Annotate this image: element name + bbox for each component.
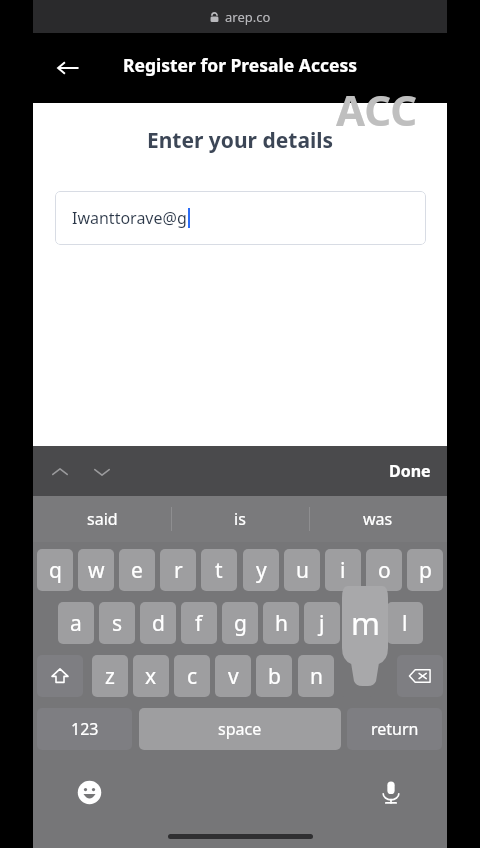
- button[interactable]: g: [222, 602, 258, 644]
- button[interactable]: a: [58, 602, 94, 644]
- button[interactable]: e: [119, 549, 155, 591]
- button[interactable]: t: [201, 549, 237, 591]
- button[interactable]: Iwanttorave@g: [55, 191, 426, 245]
- button[interactable]: c: [174, 655, 210, 697]
- button[interactable]: Next field: [83, 453, 121, 491]
- button[interactable]: p: [407, 549, 443, 591]
- staticText: y: [256, 556, 267, 585]
- button[interactable]: u: [284, 549, 320, 591]
- button[interactable]: was: [309, 496, 447, 542]
- staticText: said: [87, 508, 118, 530]
- button[interactable]: f: [181, 602, 217, 644]
- staticText: w: [88, 556, 105, 585]
- button[interactable]: Address bar arep.co: [33, 0, 447, 33]
- staticText: n: [310, 662, 323, 691]
- staticText: was: [363, 508, 393, 530]
- staticText: m: [351, 602, 380, 644]
- button[interactable]: x: [133, 655, 169, 697]
- button[interactable]: w: [78, 549, 114, 591]
- staticText: i: [340, 556, 346, 585]
- staticText: f: [195, 609, 203, 638]
- button[interactable]: n: [298, 655, 334, 697]
- button[interactable]: Previous field: [41, 453, 79, 491]
- staticText: b: [268, 662, 281, 691]
- staticText: o: [378, 556, 391, 585]
- button[interactable]: is: [171, 496, 309, 542]
- staticText: e: [131, 556, 143, 585]
- button[interactable]: o: [366, 549, 402, 591]
- button[interactable]: 123: [37, 708, 132, 750]
- staticText: Iwanttorave@g: [72, 207, 187, 229]
- button[interactable]: Done: [379, 452, 441, 490]
- button[interactable]: y: [243, 549, 279, 591]
- staticText: g: [234, 609, 247, 638]
- button[interactable]: Dictation: [371, 772, 411, 812]
- button[interactable]: Backspace: [397, 655, 443, 697]
- button[interactable]: space: [139, 708, 341, 750]
- staticText: arep.co: [225, 8, 271, 26]
- staticText: return: [371, 718, 419, 740]
- button[interactable]: Shift: [37, 655, 83, 697]
- button[interactable]: return: [347, 708, 442, 750]
- button[interactable]: q: [37, 549, 73, 591]
- button[interactable]: v: [215, 655, 251, 697]
- button[interactable]: Emoji: [69, 772, 109, 812]
- button[interactable]: i: [325, 549, 361, 591]
- staticText: u: [296, 556, 309, 585]
- button[interactable]: r: [160, 549, 196, 591]
- button[interactable]: b: [256, 655, 292, 697]
- button[interactable]: d: [140, 602, 176, 644]
- staticText: s: [112, 609, 123, 638]
- staticText: q: [49, 556, 62, 585]
- staticText: ACC: [336, 81, 418, 138]
- button[interactable]: s: [99, 602, 135, 644]
- staticText: j: [319, 609, 325, 638]
- staticText: t: [215, 556, 223, 585]
- staticText: z: [105, 662, 115, 691]
- staticText: Register for Presale Access: [123, 53, 357, 77]
- staticText: 123: [71, 718, 99, 740]
- staticText: is: [234, 508, 246, 530]
- button[interactable]: [339, 655, 375, 697]
- button[interactable]: said: [33, 496, 171, 542]
- button[interactable]: h: [263, 602, 299, 644]
- button[interactable]: l: [387, 602, 423, 644]
- button[interactable]: Back: [45, 45, 91, 91]
- staticText: a: [70, 609, 82, 638]
- staticText: r: [174, 556, 183, 585]
- staticText: p: [419, 556, 432, 585]
- staticText: l: [402, 609, 408, 638]
- staticText: Enter your details: [33, 126, 447, 155]
- staticText: c: [187, 662, 198, 691]
- staticText: h: [275, 609, 288, 638]
- staticText: Done: [389, 460, 431, 482]
- staticText: v: [228, 662, 239, 691]
- staticText: space: [218, 718, 262, 740]
- staticText: d: [152, 609, 165, 638]
- button[interactable]: z: [92, 655, 128, 697]
- button[interactable]: [345, 602, 381, 644]
- staticText: x: [145, 662, 157, 691]
- button[interactable]: j: [304, 602, 340, 644]
